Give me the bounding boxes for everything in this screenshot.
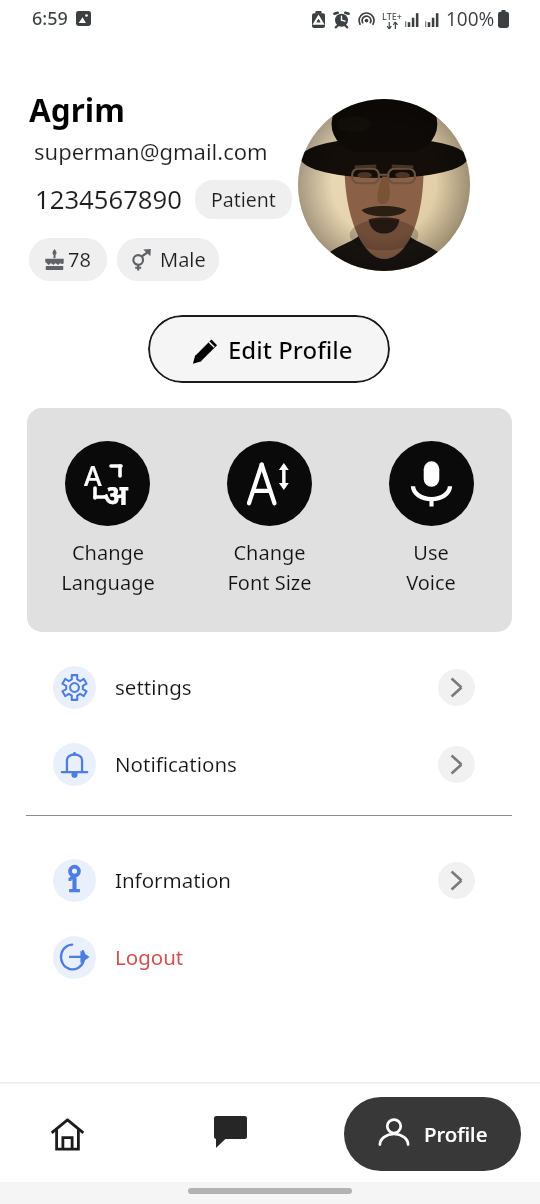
staticText: 78 (68, 246, 91, 273)
staticText: Edit Profile (228, 333, 353, 366)
staticText: Notifications (115, 750, 237, 778)
staticText: 6:59 (32, 6, 68, 31)
button[interactable]: Profile photo (298, 99, 470, 271)
staticText: Profile (424, 1120, 488, 1148)
staticText: Agrim (29, 88, 125, 131)
button[interactable]: Profile (344, 1097, 521, 1171)
staticText: 100% (446, 6, 495, 32)
staticText: 1234567890 (35, 182, 182, 217)
button[interactable]: Patient (195, 180, 292, 219)
button[interactable]: Home (37, 1104, 97, 1164)
staticText: superman@gmail.com (34, 136, 268, 166)
staticText: Male (160, 246, 206, 273)
staticText: Use Voice (406, 539, 456, 596)
button[interactable]: settings (0, 657, 540, 717)
button[interactable]: Information (0, 850, 540, 910)
button[interactable]: Male (117, 238, 219, 281)
staticText: Patient (211, 186, 276, 213)
staticText: Information (115, 866, 231, 894)
staticText: Change Language (61, 539, 155, 596)
button[interactable]: Change Font Size (188, 441, 350, 596)
button[interactable]: Logout (0, 927, 540, 987)
button[interactable]: Edit Profile (148, 315, 390, 383)
staticText: अ (103, 474, 128, 513)
button[interactable]: Change Language (27, 441, 188, 596)
staticText: Logout (115, 943, 184, 971)
button[interactable]: Use Voice (350, 441, 512, 596)
staticText: Change Font Size (227, 539, 312, 596)
staticText: A (84, 457, 102, 494)
button[interactable]: Notifications (0, 734, 540, 794)
staticText: LTE+ (382, 10, 402, 22)
button[interactable]: Messages (200, 1102, 260, 1162)
button[interactable]: 78 (29, 238, 107, 281)
staticText: settings (115, 673, 192, 701)
